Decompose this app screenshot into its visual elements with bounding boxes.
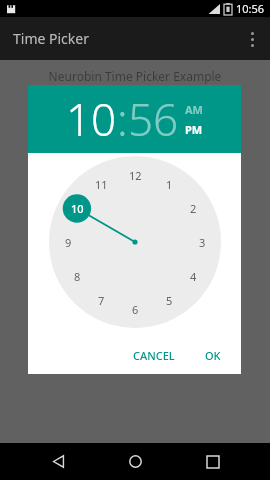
staticText: Time Picker bbox=[13, 29, 89, 48]
staticText: : bbox=[117, 89, 128, 149]
staticText: Neurobin Time Picker Example bbox=[0, 68, 270, 84]
staticText: 7 bbox=[98, 293, 105, 308]
staticText: 10 bbox=[71, 201, 84, 216]
button[interactable]: 10 bbox=[66, 89, 117, 149]
button[interactable]: Clock dial, select hour bbox=[49, 156, 221, 328]
staticText: 11 bbox=[95, 177, 108, 192]
button[interactable]: CANCEL bbox=[125, 343, 183, 368]
staticText: 2 bbox=[190, 201, 197, 216]
staticText: 5 bbox=[166, 293, 173, 308]
staticText: 1 bbox=[166, 177, 173, 192]
button[interactable]: Back bbox=[38, 443, 78, 480]
button[interactable]: OK bbox=[197, 343, 229, 368]
staticText: 8 bbox=[74, 269, 81, 284]
staticText: AM bbox=[185, 102, 203, 117]
button[interactable]: Recent apps bbox=[193, 443, 233, 480]
staticText: 4 bbox=[190, 269, 197, 284]
button[interactable]: AM bbox=[185, 102, 203, 117]
button[interactable]: Home bbox=[115, 443, 155, 480]
staticText: 10:56 bbox=[236, 1, 265, 16]
staticText: 9 bbox=[65, 235, 72, 250]
staticText: 3 bbox=[199, 235, 206, 250]
staticText: CANCEL bbox=[133, 348, 175, 363]
staticText: OK bbox=[205, 348, 221, 363]
staticText: PM bbox=[185, 122, 203, 137]
button[interactable]: 56 bbox=[128, 89, 179, 149]
staticText: 56 bbox=[128, 89, 179, 149]
staticText: 12 bbox=[129, 168, 142, 183]
staticText: 6 bbox=[132, 302, 139, 317]
button[interactable]: PM bbox=[185, 122, 203, 137]
staticText: 10 bbox=[66, 89, 117, 149]
button[interactable]: More options bbox=[234, 21, 270, 57]
